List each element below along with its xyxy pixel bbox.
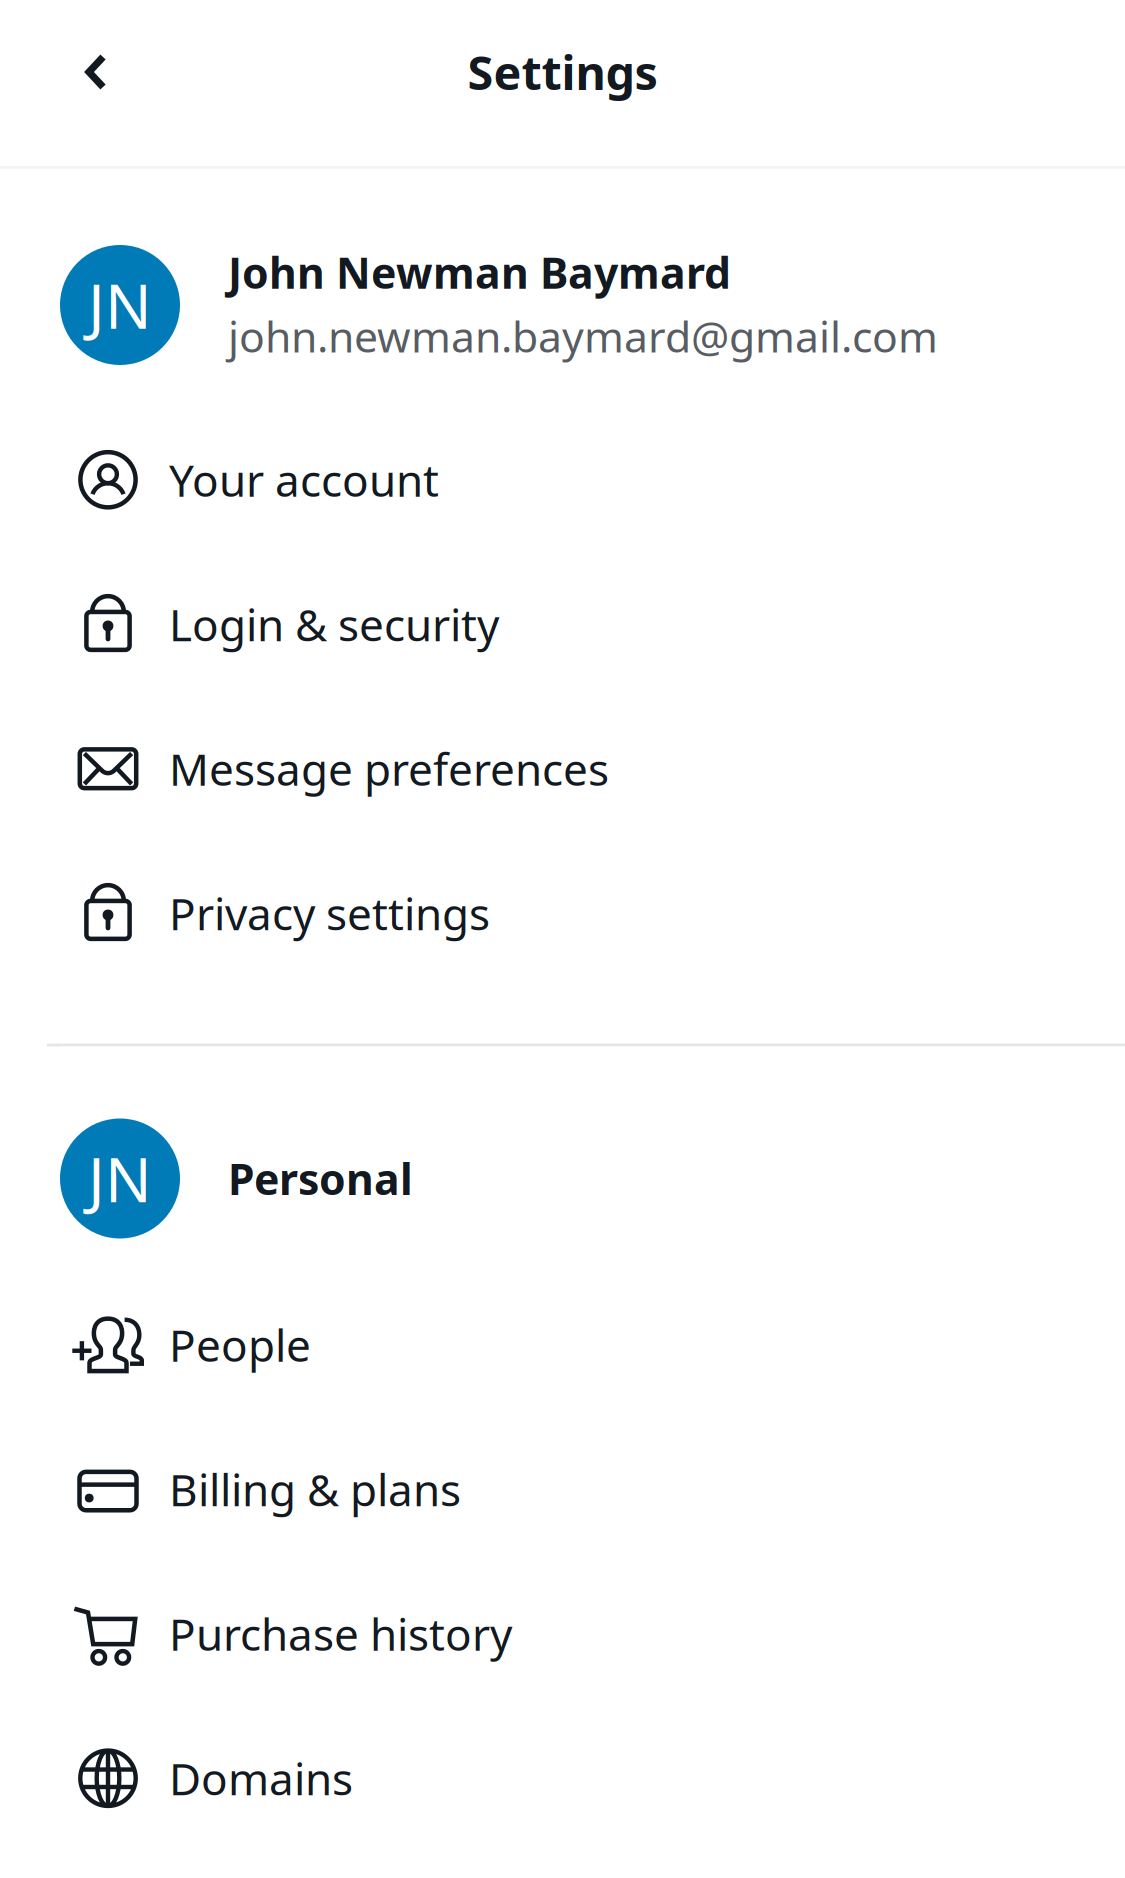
staticText: JN bbox=[88, 1138, 152, 1219]
button[interactable]: Back bbox=[48, 24, 144, 120]
button[interactable]: Login & security bbox=[0, 552, 1125, 696]
staticText: Login & security bbox=[169, 595, 499, 653]
staticText: Billing & plans bbox=[169, 1460, 461, 1518]
button[interactable]: People bbox=[0, 1272, 1125, 1417]
button[interactable]: Message preferences bbox=[0, 696, 1125, 841]
staticText: Purchase history bbox=[169, 1604, 512, 1663]
staticText: Settings bbox=[467, 41, 657, 103]
staticText: Personal bbox=[228, 1150, 413, 1207]
staticText: Domains bbox=[169, 1749, 353, 1807]
staticText: JN bbox=[88, 264, 152, 346]
button[interactable]: Privacy settings bbox=[0, 841, 1125, 985]
staticText: john.newman.baymard@gmail.com bbox=[228, 307, 938, 364]
staticText: Your account bbox=[169, 450, 439, 509]
staticText: People bbox=[169, 1315, 311, 1374]
button[interactable]: Billing & plans bbox=[0, 1417, 1125, 1561]
button[interactable]: Purchase history bbox=[0, 1561, 1125, 1706]
staticText: John Newman Baymard bbox=[228, 244, 731, 300]
staticText: Message preferences bbox=[169, 739, 609, 798]
button[interactable]: Your account bbox=[0, 407, 1125, 552]
button[interactable]: JN bbox=[0, 169, 1125, 407]
staticText: Privacy settings bbox=[169, 884, 490, 942]
button[interactable]: Domains bbox=[0, 1706, 1125, 1850]
